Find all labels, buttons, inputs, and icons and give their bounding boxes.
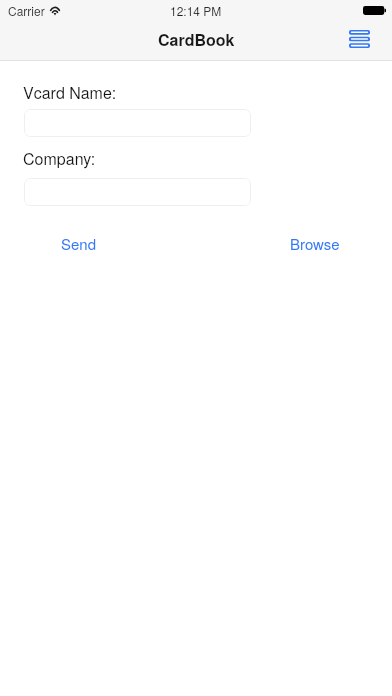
button[interactable]: Browse (282, 227, 348, 260)
staticText: Send (61, 233, 97, 254)
staticText: 12:14 PM (170, 2, 222, 19)
staticText: Browse (290, 233, 340, 254)
button[interactable]: Send (53, 227, 105, 260)
staticText: Company: (23, 147, 96, 170)
staticText: CardBook (158, 28, 235, 51)
button[interactable] (24, 109, 251, 137)
button[interactable] (24, 178, 251, 206)
button[interactable]: Menu (344, 24, 374, 54)
staticText: Vcard Name: (23, 81, 117, 104)
staticText: Carrier (8, 2, 45, 19)
